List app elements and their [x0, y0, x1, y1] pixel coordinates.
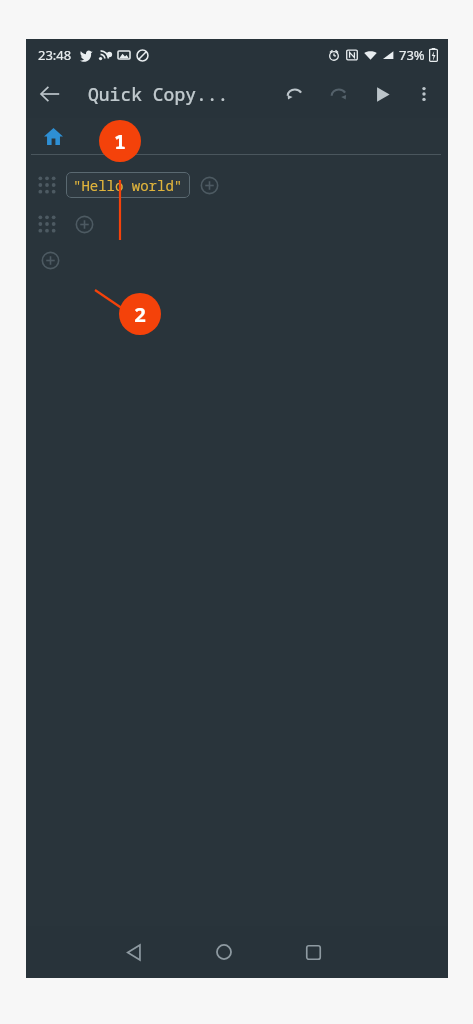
staticText: 73% — [399, 46, 425, 64]
staticText: 23:48 — [38, 46, 72, 64]
staticText: 2 — [134, 301, 146, 328]
button[interactable]: Redo — [316, 72, 360, 116]
button[interactable]: Drag handle — [34, 172, 60, 198]
button[interactable]: Add block — [197, 173, 221, 197]
button[interactable]: Back — [110, 928, 158, 976]
staticText: 1 — [114, 128, 126, 155]
button[interactable]: Home — [200, 928, 248, 976]
button[interactable]: More options — [404, 74, 444, 114]
button[interactable]: Recent apps — [289, 928, 337, 976]
staticText: Quick Copy... — [88, 82, 229, 107]
button[interactable]: Run — [360, 72, 404, 116]
button[interactable]: Drag handle — [34, 211, 60, 237]
button[interactable]: Back — [26, 70, 74, 118]
staticText: "Hello world" — [73, 176, 183, 195]
button[interactable]: Add top level block — [38, 248, 62, 272]
button[interactable]: Home — [34, 118, 72, 154]
button[interactable]: Add statement — [72, 212, 96, 236]
button[interactable]: "Hello world" — [66, 172, 190, 198]
button[interactable]: Undo — [272, 72, 316, 116]
